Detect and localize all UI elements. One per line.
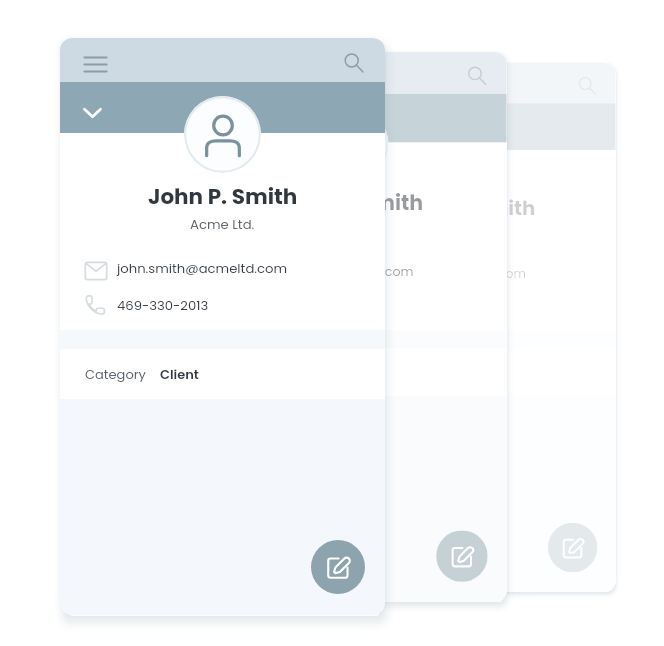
button[interactable]: Collapse [76, 92, 108, 124]
button[interactable]: Category [60, 349, 385, 399]
staticText: John P. Smith [281, 188, 424, 217]
button[interactable]: Search [338, 45, 368, 75]
button[interactable]: 469-330-2013 [60, 286, 385, 323]
button[interactable]: john.smith@acmeltd.com [197, 253, 507, 288]
button[interactable]: Category [197, 348, 507, 396]
staticText: john.smith@acmeltd.com [251, 263, 414, 280]
staticText: Category [85, 365, 146, 383]
button[interactable]: Edit contact [436, 530, 488, 582]
button[interactable]: Edit contact [548, 523, 597, 572]
button[interactable]: Menu [336, 69, 364, 97]
staticText: 469-330-2013 [117, 296, 209, 314]
staticText: Category [341, 362, 397, 379]
button[interactable]: 469-330-2013 [197, 288, 507, 324]
staticText: john.smith@acmeltd.com [370, 265, 527, 282]
button[interactable]: john.smith@acmeltd.com [60, 249, 385, 286]
button[interactable]: Search [462, 59, 490, 87]
button[interactable]: Collapse [333, 112, 362, 142]
staticText: 469-330-2013 [370, 299, 454, 316]
button[interactable]: Search [573, 69, 600, 97]
staticText: John P. Smith [399, 194, 536, 221]
staticText: john.smith@acmeltd.com [117, 259, 288, 277]
button[interactable]: Menu [80, 45, 110, 75]
staticText: Acme Ltd. [190, 215, 255, 233]
button[interactable]: Collapse [212, 103, 243, 134]
staticText: John P. Smith [148, 181, 298, 211]
button[interactable]: Menu [216, 59, 245, 87]
button[interactable]: john.smith@acmeltd.com [318, 256, 616, 290]
button[interactable]: Edit contact [311, 540, 365, 594]
staticText: Client [160, 365, 199, 383]
